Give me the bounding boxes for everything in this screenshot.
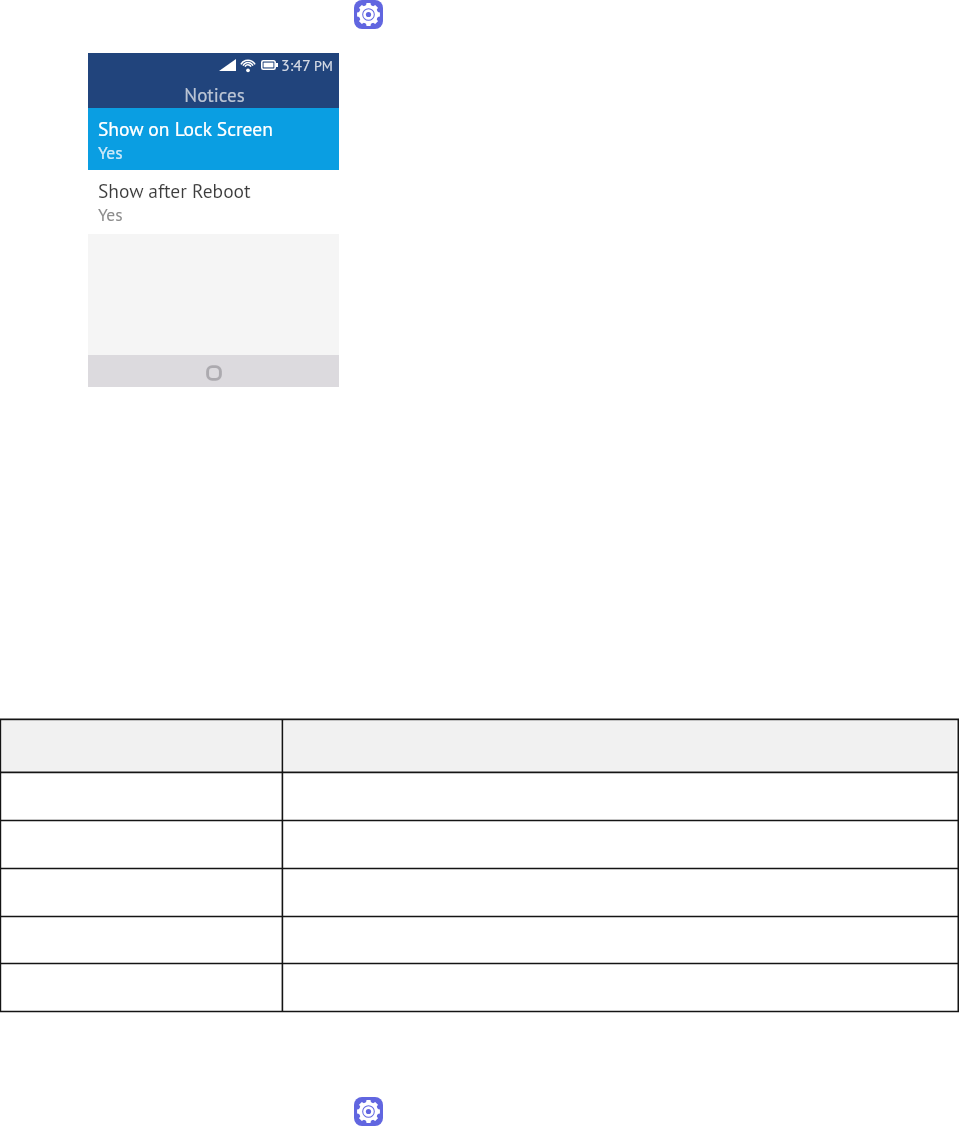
staticText: Show on Lock Screen <box>98 116 273 141</box>
staticText: PM <box>314 57 333 75</box>
staticText: Yes <box>98 141 123 164</box>
button[interactable]: Settings <box>354 0 383 29</box>
button[interactable]: Settings <box>354 1097 383 1126</box>
button[interactable]: Show after Reboot <box>88 170 339 234</box>
staticText: 3:47 <box>281 55 311 76</box>
button[interactable]: Home <box>206 365 222 381</box>
staticText: Yes <box>98 203 123 226</box>
staticText: Show after Reboot <box>98 178 251 203</box>
button[interactable]: Show on Lock Screen <box>88 108 339 170</box>
staticText: Notices <box>89 83 340 108</box>
